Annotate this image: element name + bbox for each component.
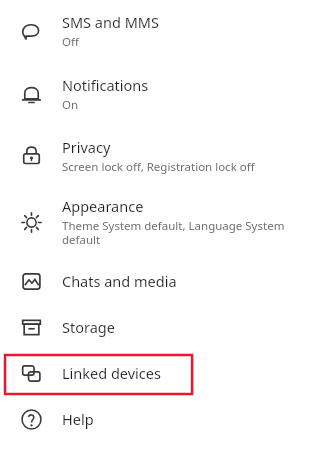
staticText: Screen lock off, Registration lock off bbox=[62, 159, 255, 175]
other: Storage bbox=[21, 317, 42, 338]
staticText: Appearance bbox=[62, 196, 144, 216]
staticText: Linked devices bbox=[62, 363, 161, 383]
staticText: Chats and media bbox=[62, 271, 177, 291]
staticText: Theme System default, Language System de… bbox=[62, 218, 317, 248]
button[interactable]: Privacy bbox=[0, 125, 329, 186]
button[interactable]: Help bbox=[0, 396, 329, 442]
button[interactable]: Chats and media bbox=[0, 258, 329, 304]
staticText: Notifications bbox=[62, 75, 149, 95]
staticText: Off bbox=[62, 34, 79, 50]
other: Linked devices bbox=[21, 363, 42, 384]
staticText: SMS and MMS bbox=[62, 12, 159, 32]
staticText: Privacy bbox=[62, 137, 111, 157]
button[interactable]: Linked devices bbox=[0, 350, 329, 396]
staticText: Help bbox=[62, 409, 94, 429]
button[interactable]: Appearance bbox=[0, 186, 329, 258]
button[interactable]: Notifications bbox=[0, 62, 329, 125]
staticText: On bbox=[62, 97, 79, 113]
other: Privacy bbox=[21, 145, 42, 166]
staticText: Storage bbox=[62, 317, 115, 337]
other: SMS and MMS bbox=[21, 21, 42, 42]
other: Appearance bbox=[21, 212, 42, 233]
other: Help bbox=[21, 409, 42, 430]
other: Notifications bbox=[21, 83, 42, 104]
button[interactable]: Storage bbox=[0, 304, 329, 350]
button[interactable]: SMS and MMS bbox=[0, 0, 329, 62]
other: Chats and media bbox=[21, 271, 42, 292]
